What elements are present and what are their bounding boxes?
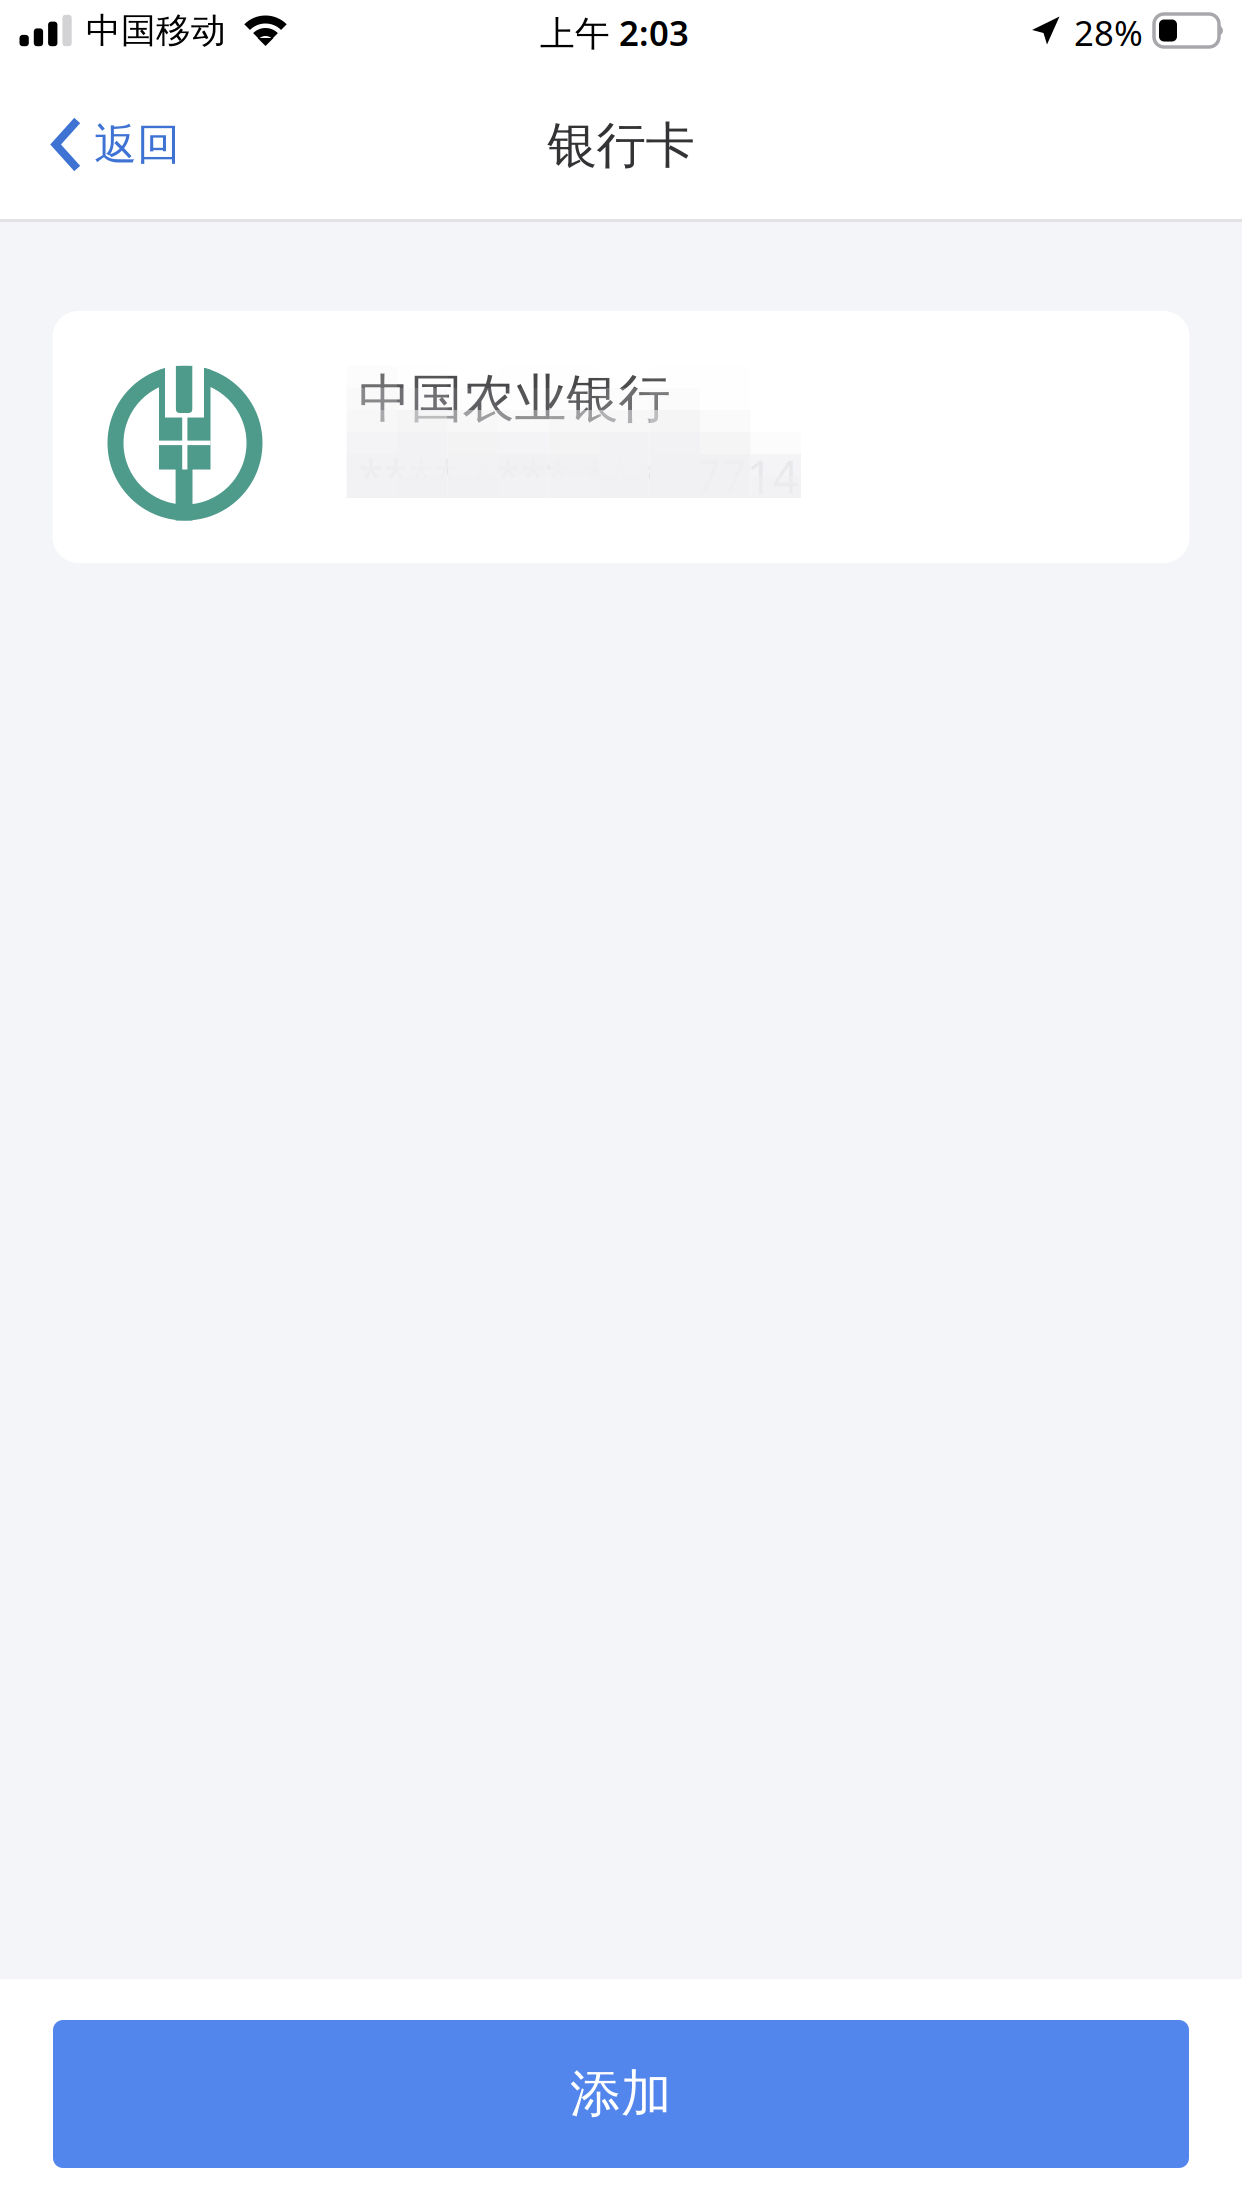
staticText: 添加 — [570, 2063, 672, 2125]
button[interactable]: 中国农业银行 — [52, 311, 1189, 563]
button[interactable]: 返回 — [0, 88, 214, 200]
staticText: **** **** **** 7714 — [358, 446, 798, 506]
staticText: 28% — [1074, 9, 1143, 55]
staticText: 银行卡 — [547, 115, 694, 176]
staticText: 返回 — [94, 118, 180, 171]
button[interactable]: 添加 — [53, 2020, 1189, 2168]
staticText: 中国移动 — [86, 9, 226, 52]
staticText: 中国农业银行 — [358, 367, 670, 431]
staticText: 上午 2:03 — [540, 9, 689, 55]
